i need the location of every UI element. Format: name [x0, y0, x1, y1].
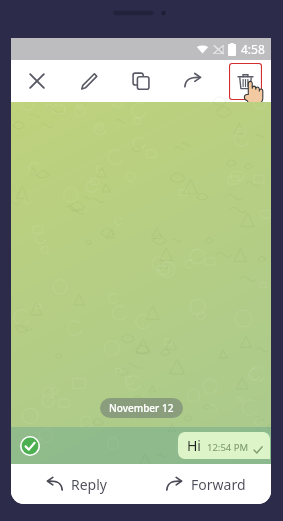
button[interactable]: Close: [11, 60, 63, 102]
staticText: Hi: [187, 436, 201, 455]
staticText: Reply: [71, 475, 107, 494]
button[interactable]: Forward: [141, 464, 271, 504]
staticText: 4:58: [241, 41, 265, 57]
staticText: 12:54 PM: [207, 441, 249, 454]
button[interactable]: Hi: [187, 436, 263, 455]
button[interactable]: Forward: [167, 60, 219, 102]
button[interactable]: Copy: [115, 60, 167, 102]
staticText: Forward: [191, 475, 246, 494]
button[interactable]: Delete: [219, 60, 271, 102]
staticText: November 12: [109, 401, 174, 415]
button[interactable]: Edit: [63, 60, 115, 102]
button[interactable]: Reply: [11, 464, 141, 504]
